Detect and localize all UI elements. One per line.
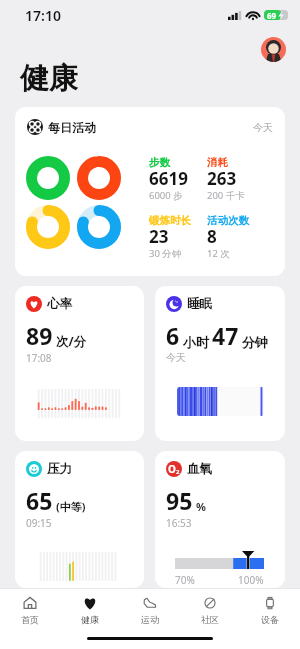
staticText: 设备 [261,614,279,625]
button[interactable]: 睡眠 [155,286,285,441]
staticText: 200 千卡 [207,189,245,202]
button[interactable]: 运动 [120,596,180,625]
button[interactable]: 健康 [60,596,120,625]
button[interactable]: 首页 [0,596,60,625]
staticText: 6 [166,320,180,351]
staticText: 运动 [141,614,159,625]
staticText: 健康 [81,614,99,625]
staticText: 压力 [47,461,72,477]
staticText: 首页 [21,614,39,625]
staticText: 6619 [149,167,188,190]
staticText: 17:08 [26,351,52,365]
staticText: 09:15 [26,516,52,530]
staticText: 263 [207,167,237,190]
staticText: 血氧 [187,461,212,477]
staticText: 步数 [149,156,170,169]
staticText: 70% [175,573,195,587]
staticText: (中等) [56,499,86,514]
button[interactable]: Profile [261,37,286,62]
staticText: O [168,462,176,476]
staticText: 睡眠 [187,296,212,312]
staticText: 47 [212,320,239,351]
staticText: 消耗 [207,156,228,169]
staticText: 23 [149,225,169,248]
staticText: 次/分 [56,333,87,350]
staticText: 16:53 [166,516,192,530]
staticText: 2 [176,468,180,476]
button[interactable]: 心率 [15,286,144,441]
staticText: 今天 [166,351,186,364]
staticText: 69 [267,10,277,19]
staticText: 今天 [253,121,273,134]
staticText: 6000 步 [149,189,183,202]
staticText: 心率 [47,296,72,312]
staticText: 12 次 [207,247,230,260]
staticText: 健康 [20,60,78,97]
staticText: 65 [26,485,53,516]
button[interactable]: 设备 [240,596,299,625]
staticText: 分钟 [242,334,268,350]
button[interactable]: 每日活动 [15,107,285,276]
staticText: 89 [26,320,53,351]
staticText: 活动次数 [207,214,249,227]
staticText: 100% [238,573,264,587]
staticText: 每日活动 [48,120,96,135]
button[interactable]: O [155,451,285,588]
staticText: 小时 [183,334,209,350]
staticText: 17:10 [25,6,61,25]
button[interactable]: 社区 [180,596,240,625]
staticText: % [196,499,206,514]
staticText: 8 [207,225,217,248]
button[interactable]: 压力 [15,451,144,588]
staticText: 社区 [201,614,219,625]
staticText: 95 [166,485,193,516]
staticText: 30 分钟 [149,247,182,260]
staticText: 锻炼时长 [149,214,191,227]
